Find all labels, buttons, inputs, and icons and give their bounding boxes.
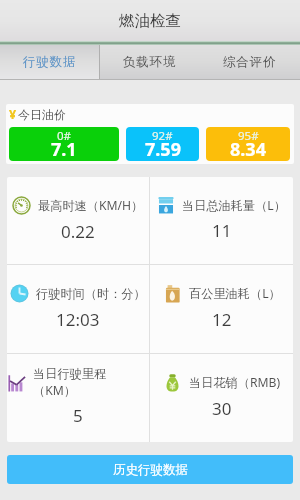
staticText: 0.22 (61, 220, 95, 243)
staticText: 12 (212, 308, 232, 331)
staticText: 95# (238, 128, 259, 144)
staticText: 综合评价 (223, 54, 277, 70)
button[interactable]: 综合评价 (200, 45, 300, 79)
button[interactable]: 行驶时间（时：分） (7, 265, 149, 353)
staticText: 当日总油耗量（L） (182, 197, 286, 214)
staticText: 8.34 (230, 137, 266, 161)
staticText: 行驶时间（时：分） (36, 286, 146, 301)
button[interactable]: 历史行驶数据 (7, 455, 293, 484)
staticText: 历史行驶数据 (113, 462, 188, 478)
staticText: 12:03 (56, 308, 100, 331)
staticText: 7.1 (51, 137, 77, 161)
staticText: 当日花销（RMB) (189, 374, 281, 391)
staticText: 燃油检查 (119, 11, 181, 31)
button[interactable]: 百公里油耗（L） (150, 265, 293, 353)
staticText: 5 (73, 404, 83, 427)
button[interactable]: 当日花销（RMB) (150, 354, 293, 442)
staticText: 当日行驶里程（KM） (33, 366, 149, 399)
button[interactable]: 95# (206, 127, 290, 161)
staticText: 负载环境 (123, 54, 177, 70)
button[interactable]: 最高时速（KM/H） (7, 177, 149, 264)
button[interactable]: 0# (9, 127, 119, 161)
staticText: 行驶数据 (23, 54, 77, 70)
button[interactable]: 当日行驶里程（KM） (7, 354, 149, 442)
staticText: 最高时速（KM/H） (38, 197, 144, 214)
staticText: 92# (152, 128, 173, 144)
button[interactable]: 92# (126, 127, 199, 161)
button[interactable]: 行驶数据 (0, 45, 99, 79)
staticText: 7.59 (145, 137, 181, 161)
staticText: 11 (212, 219, 232, 242)
staticText: 今日油价 (18, 107, 66, 122)
staticText: 0# (57, 128, 72, 144)
staticText: 百公里油耗（L） (189, 285, 281, 302)
staticText: ¥ (9, 106, 17, 123)
staticText: 30 (212, 397, 232, 420)
button[interactable]: 负载环境 (100, 45, 200, 79)
button[interactable]: 当日总油耗量（L） (150, 177, 293, 264)
